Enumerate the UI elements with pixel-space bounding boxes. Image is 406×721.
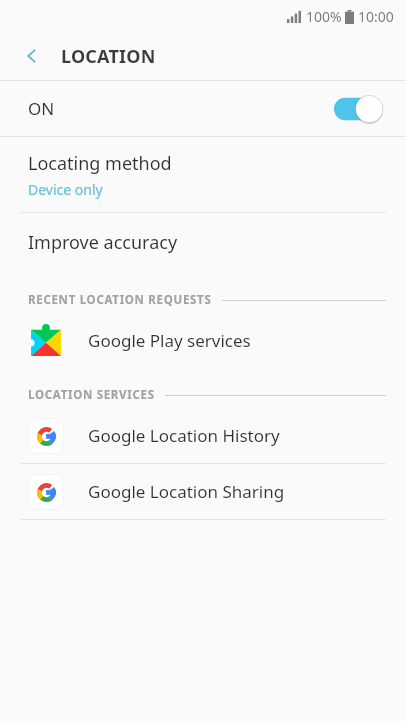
staticText: LOCATION SERVICES: [28, 387, 155, 403]
staticText: Google Location Sharing: [88, 480, 285, 503]
button[interactable]: Google Location Sharing: [0, 464, 406, 519]
button[interactable]: Google Location History: [0, 408, 406, 463]
staticText: Google Location History: [88, 424, 280, 447]
staticText: 100%: [306, 7, 342, 26]
staticText: 10:00: [358, 7, 394, 26]
staticText: Locating method: [28, 151, 172, 176]
staticText: Improve accuracy: [28, 230, 178, 255]
button[interactable]: Improve accuracy: [0, 213, 406, 271]
staticText: Device only: [28, 180, 103, 199]
button[interactable]: Back: [14, 38, 50, 74]
button[interactable]: Google Play services: [0, 313, 406, 368]
staticText: Google Play services: [88, 329, 251, 352]
button[interactable]: Locating method: [0, 137, 406, 212]
staticText: RECENT LOCATION REQUESTS: [28, 292, 212, 308]
button[interactable]: ON: [0, 81, 406, 136]
staticText: ON: [28, 97, 55, 120]
staticText: LOCATION: [61, 44, 156, 69]
other: Location on: [334, 95, 384, 123]
